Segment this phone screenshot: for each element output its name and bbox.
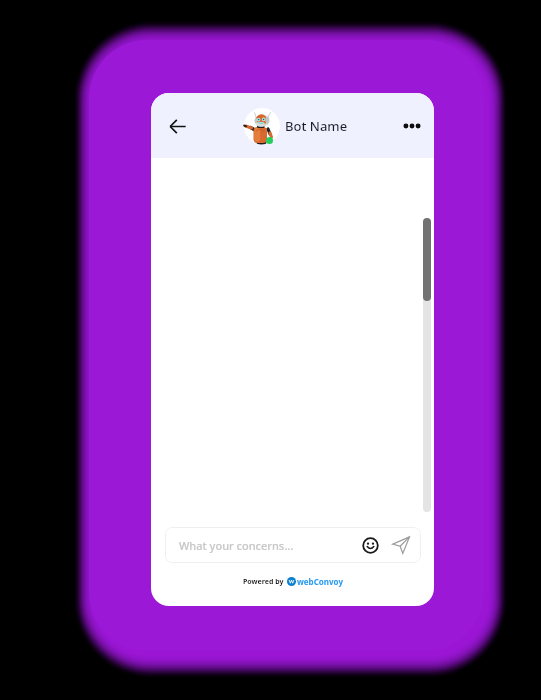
staticText: What your concerns...	[179, 538, 294, 553]
button[interactable]: What your concerns...	[165, 527, 421, 563]
button[interactable]: More options	[397, 111, 427, 141]
button[interactable]: Back	[160, 109, 194, 143]
staticText: webConvoy	[297, 576, 343, 587]
staticText: Bot Name	[285, 117, 348, 135]
button[interactable]: Send	[390, 534, 412, 556]
staticText: Powered by	[243, 577, 284, 587]
button[interactable]: Emoji	[359, 534, 381, 556]
